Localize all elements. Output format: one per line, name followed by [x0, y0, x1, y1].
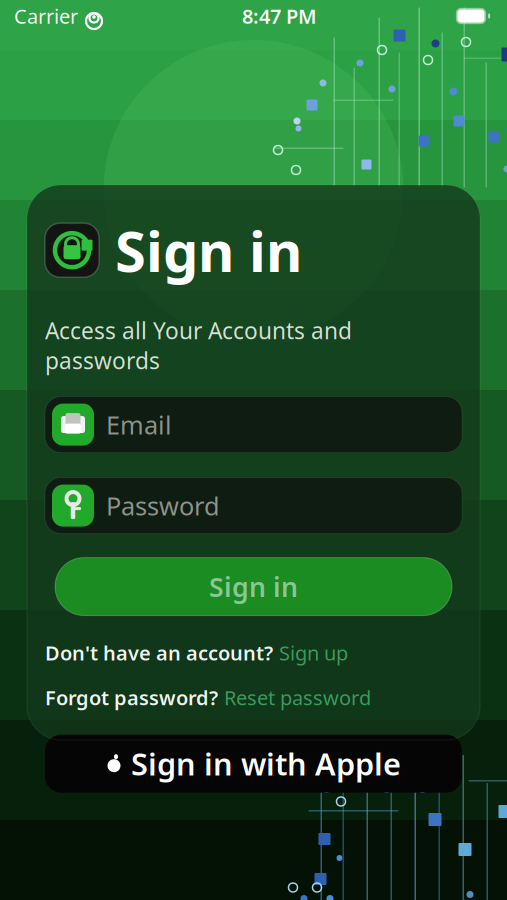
- button[interactable]: Email: [45, 397, 462, 453]
- button[interactable]: Reset password: [224, 684, 371, 711]
- staticText: Sign in with Apple: [131, 743, 401, 784]
- staticText: Password: [106, 489, 220, 522]
- staticText: Reset password: [224, 684, 371, 711]
- staticText: Sign in: [209, 569, 298, 604]
- staticText: Email: [106, 408, 172, 441]
- staticText: Sign in: [115, 213, 302, 287]
- staticText: Don't have an account?: [45, 640, 273, 666]
- button[interactable]: Sign in with Apple: [45, 735, 462, 793]
- staticText: Access all Your Accounts and passwords: [45, 315, 352, 376]
- button[interactable]: Sign up: [279, 640, 348, 666]
- staticText: 8:47 PM: [242, 3, 317, 29]
- button[interactable]: Sign in: [55, 558, 452, 616]
- staticText: Carrier: [14, 3, 78, 29]
- staticText: Forgot password?: [45, 684, 218, 711]
- button[interactable]: Password: [45, 478, 462, 534]
- staticText: Sign up: [279, 640, 348, 666]
